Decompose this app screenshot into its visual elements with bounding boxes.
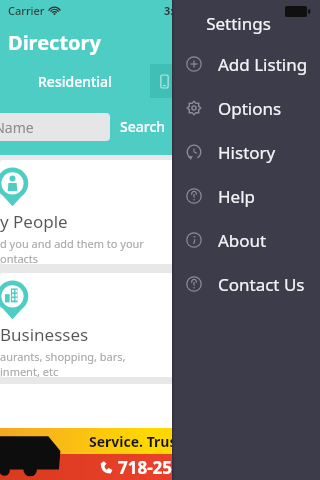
- staticText: Settings: [206, 12, 271, 35]
- staticText: inment, etc: [0, 364, 59, 377]
- button[interactable]: History: [172, 130, 320, 174]
- button[interactable]: Options: [172, 86, 320, 130]
- staticText: Add Listing: [218, 53, 308, 76]
- staticText: d you and add them to your: [0, 236, 144, 251]
- staticText: Options: [218, 97, 282, 120]
- button[interactable]: last Name: [0, 113, 110, 141]
- button[interactable]: Reverse Phone: [150, 64, 320, 98]
- staticText: aurants, shopping, bars,: [0, 349, 126, 364]
- staticText: 3:06 PM: [164, 3, 207, 18]
- staticText: About: [218, 229, 267, 252]
- button[interactable]: Search: [114, 117, 172, 136]
- button[interactable]: Businesses: [0, 273, 302, 377]
- button[interactable]: Settings: [266, 29, 292, 55]
- button[interactable]: About: [172, 218, 320, 262]
- staticText: Residential: [38, 72, 112, 91]
- button[interactable]: Contact Us: [172, 262, 320, 306]
- staticText: Businesses: [0, 323, 89, 346]
- staticText: 718-256-3655: [118, 456, 227, 479]
- button[interactable]: Residential: [0, 64, 150, 98]
- staticText: Contact Us: [218, 273, 305, 296]
- staticText: last Name: [0, 118, 34, 137]
- button[interactable]: Help: [172, 174, 320, 218]
- staticText: Help: [218, 185, 256, 208]
- staticText: y People: [0, 210, 68, 233]
- staticText: ontacts: [0, 251, 39, 264]
- staticText: Search: [120, 117, 166, 136]
- staticText: Directory: [8, 29, 101, 56]
- button[interactable]: y People: [0, 160, 302, 264]
- staticText: History: [218, 141, 276, 164]
- button[interactable]: Add Listing: [172, 42, 320, 86]
- staticText: Service. Trust. Speed.: [89, 432, 237, 451]
- staticText: Carrier: [8, 3, 45, 18]
